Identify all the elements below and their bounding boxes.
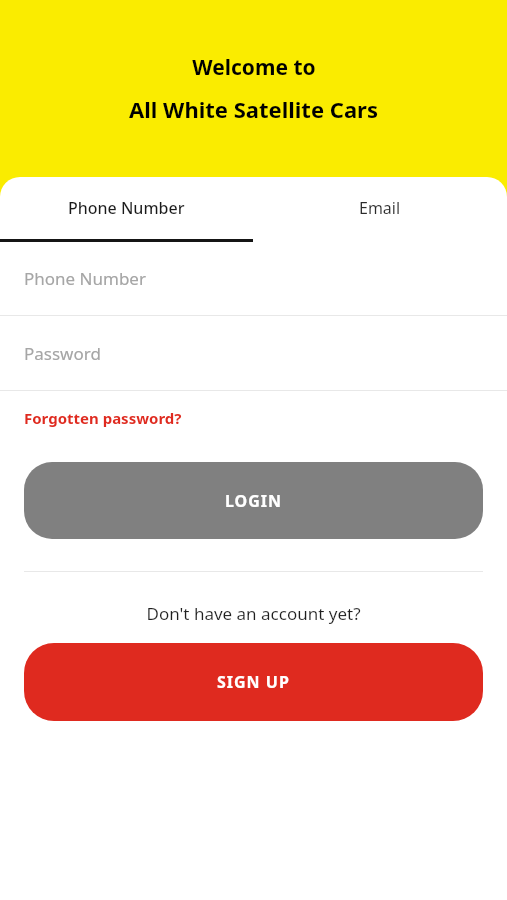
staticText: Forgotten password? bbox=[24, 408, 182, 428]
button[interactable]: LOGIN bbox=[24, 462, 483, 539]
button[interactable]: Phone Number bbox=[0, 242, 507, 315]
staticText: LOGIN bbox=[225, 490, 283, 512]
staticText: Phone Number bbox=[24, 267, 146, 290]
staticText: All White Satellite Cars bbox=[129, 94, 378, 124]
staticText: Phone Number bbox=[68, 197, 185, 219]
button[interactable]: Forgotten password? bbox=[0, 391, 507, 445]
staticText: SIGN UP bbox=[217, 671, 290, 693]
button[interactable]: Password bbox=[0, 316, 507, 390]
button[interactable]: SIGN UP bbox=[24, 643, 483, 721]
button[interactable]: Email bbox=[253, 177, 507, 239]
button[interactable]: Phone Number bbox=[0, 177, 253, 239]
staticText: Don't have an account yet? bbox=[0, 602, 507, 625]
staticText: Email bbox=[359, 197, 401, 219]
staticText: Welcome to bbox=[192, 53, 316, 82]
staticText: Password bbox=[24, 342, 101, 365]
